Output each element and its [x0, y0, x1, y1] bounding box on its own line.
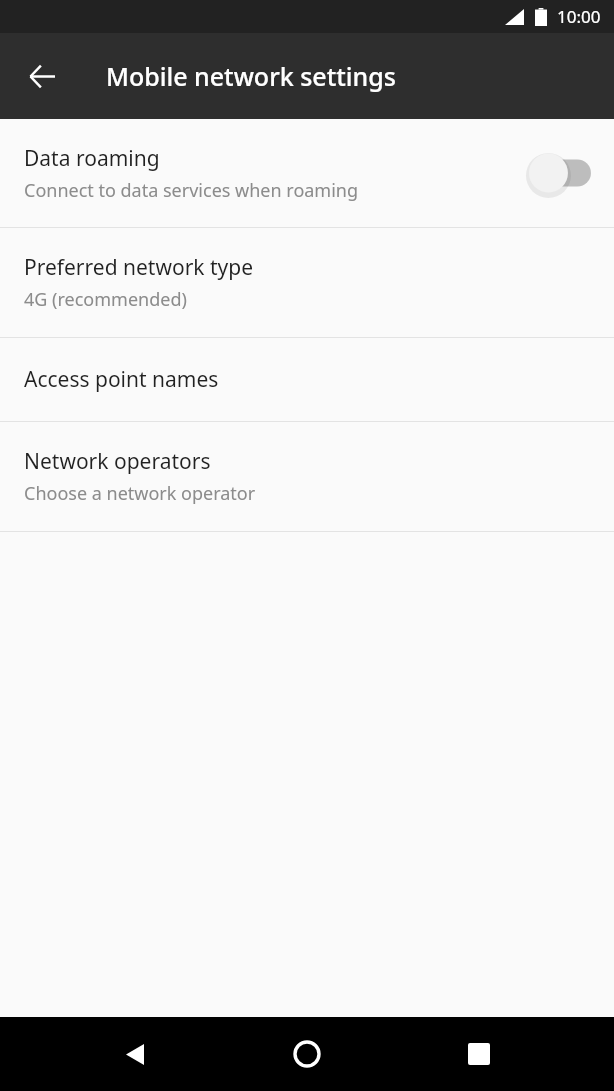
- button[interactable]: Navigate up: [10, 44, 74, 108]
- staticText: Access point names: [24, 365, 219, 394]
- button[interactable]: Access point names: [0, 338, 614, 421]
- staticText: Mobile network settings: [106, 59, 396, 93]
- button[interactable]: Home: [276, 1023, 338, 1085]
- staticText: Connect to data services when roaming: [24, 178, 359, 203]
- button[interactable]: Network operators: [0, 422, 614, 531]
- staticText: Data roaming: [24, 144, 160, 173]
- button[interactable]: Data roaming: [524, 150, 596, 196]
- staticText: Network operators: [24, 447, 211, 476]
- button[interactable]: Preferred network type: [0, 228, 614, 337]
- staticText: Choose a network operator: [24, 481, 256, 506]
- staticText: 4G (recommended): [24, 287, 187, 312]
- staticText: 10:00: [557, 5, 601, 28]
- staticText: Preferred network type: [24, 253, 254, 282]
- button[interactable]: Back: [104, 1023, 166, 1085]
- button[interactable]: Recent apps: [448, 1023, 510, 1085]
- button[interactable]: Data roaming: [0, 119, 614, 227]
